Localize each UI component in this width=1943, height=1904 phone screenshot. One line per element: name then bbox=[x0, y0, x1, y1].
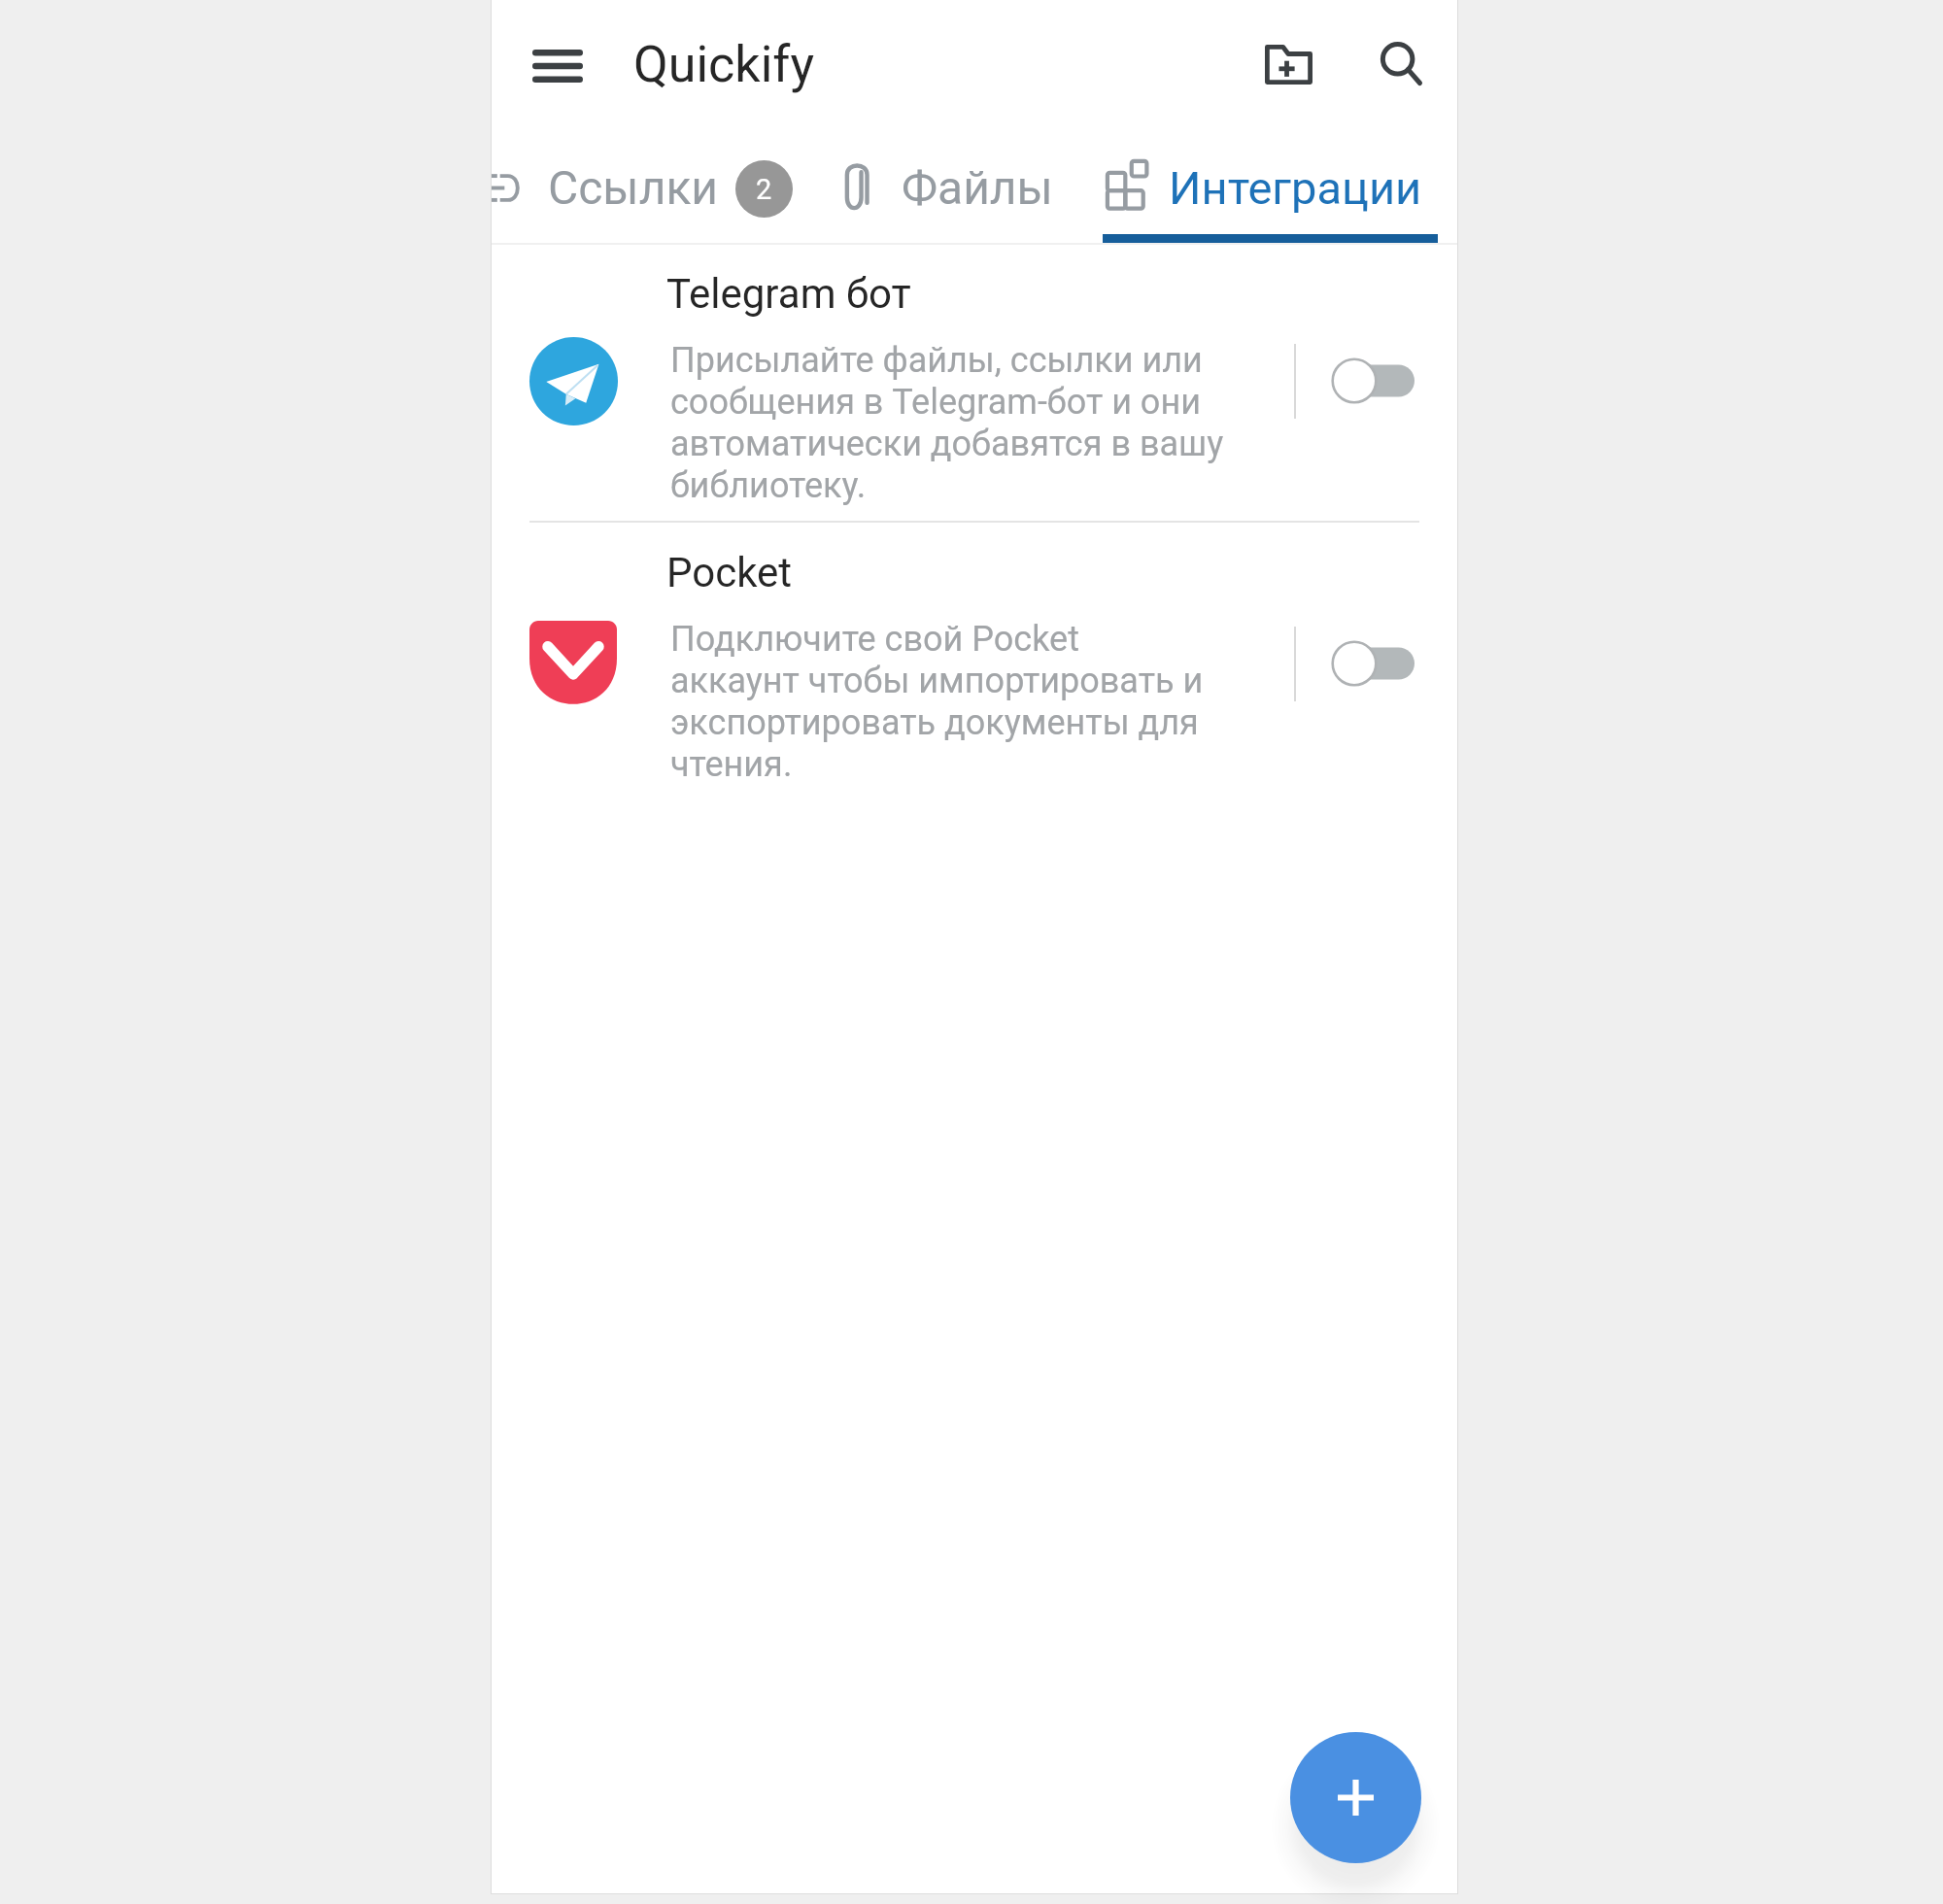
staticText: Интеграции bbox=[1169, 161, 1422, 215]
button[interactable]: Ссылки bbox=[492, 136, 793, 243]
button[interactable]: Файлы bbox=[826, 136, 1051, 243]
staticText: Подключите свой Pocket аккаунт чтобы имп… bbox=[670, 619, 1292, 785]
button[interactable]: Toggle bbox=[1312, 334, 1449, 427]
button[interactable]: Интеграции bbox=[1103, 136, 1438, 243]
staticText: Файлы bbox=[902, 160, 1053, 215]
button[interactable]: Create new folder bbox=[1242, 16, 1335, 109]
staticText: 2 bbox=[756, 173, 772, 206]
staticText: Ссылки bbox=[548, 160, 719, 215]
button[interactable]: Menu bbox=[511, 19, 604, 113]
staticText: Pocket bbox=[666, 549, 793, 596]
button[interactable]: Pocket bbox=[492, 543, 1457, 805]
staticText: Telegram бот bbox=[666, 270, 911, 318]
button[interactable]: Telegram бот bbox=[492, 260, 1457, 523]
button[interactable]: Add bbox=[1290, 1732, 1421, 1863]
staticText: Присылайте файлы, ссылки или сообщения в… bbox=[670, 340, 1292, 506]
staticText: Quickify bbox=[633, 35, 814, 94]
button[interactable]: Search bbox=[1354, 17, 1448, 111]
button[interactable]: Toggle bbox=[1312, 617, 1449, 710]
